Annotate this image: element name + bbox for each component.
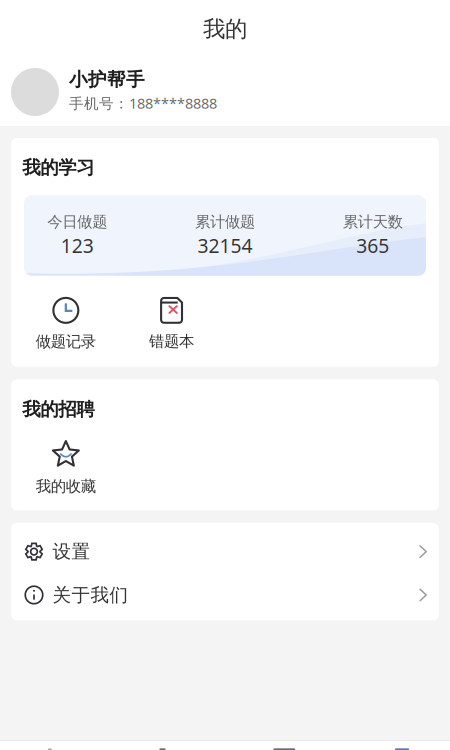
button[interactable]: 设置: [11, 530, 439, 573]
staticText: 小护帮手: [69, 68, 145, 91]
button[interactable]: 我的: [337, 741, 450, 750]
staticText: 32154: [197, 232, 252, 259]
button[interactable]: 资讯: [225, 741, 337, 750]
staticText: 我的: [203, 15, 247, 43]
staticText: 手机号：188****8888: [69, 93, 217, 113]
staticText: 错题本: [149, 332, 194, 351]
button[interactable]: 关于我们: [11, 573, 439, 617]
button[interactable]: 做题记录: [13, 298, 119, 351]
staticText: 累计天数: [343, 212, 403, 231]
button[interactable]: 错题本: [119, 298, 224, 351]
staticText: 累计做题: [195, 212, 255, 231]
staticText: 123: [61, 232, 94, 259]
button[interactable]: 我的收藏: [13, 441, 119, 496]
staticText: 今日做题: [47, 212, 107, 231]
staticText: 设置: [52, 540, 90, 563]
button[interactable]: 题库: [112, 741, 225, 750]
staticText: 我的招聘: [22, 398, 94, 421]
button[interactable]: 首页: [0, 741, 112, 750]
staticText: 关于我们: [52, 583, 128, 607]
staticText: 做题记录: [36, 332, 96, 351]
staticText: 我的收藏: [36, 477, 96, 496]
staticText: 365: [356, 232, 389, 259]
button[interactable]: 小护帮手: [0, 58, 450, 126]
staticText: 我的学习: [22, 156, 94, 179]
